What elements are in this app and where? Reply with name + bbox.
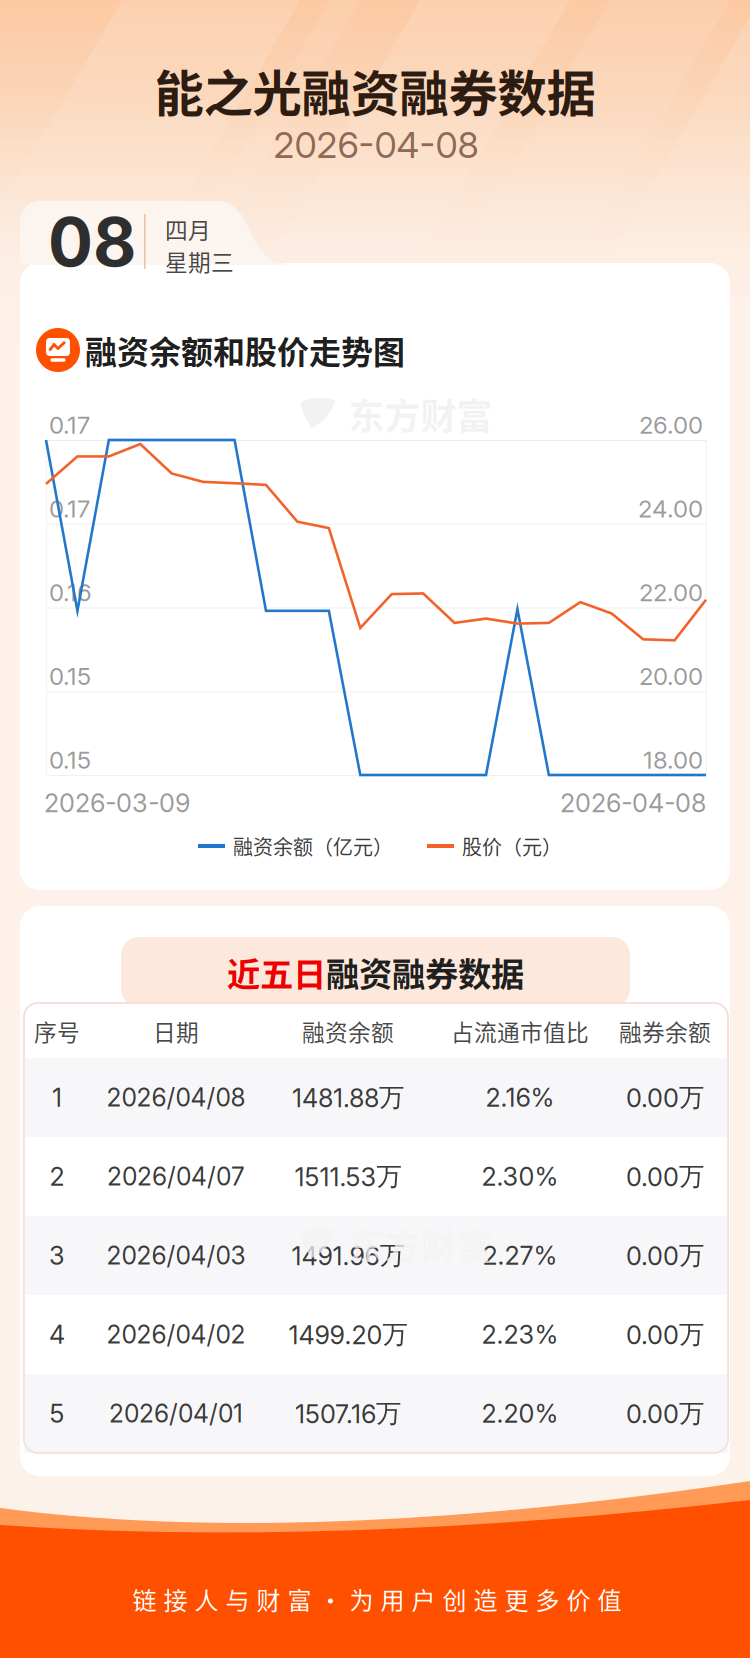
- staticText: 1: [52, 1082, 62, 1113]
- staticText: 0.00万: [626, 1397, 704, 1429]
- staticText: 融资余额（亿元）: [233, 831, 393, 860]
- staticText: 26.00: [639, 410, 703, 439]
- staticText: 1507.16万: [295, 1397, 401, 1429]
- staticText: 日期: [153, 1015, 199, 1047]
- staticText: 近五日: [227, 948, 326, 996]
- staticText: 22.00: [639, 578, 703, 607]
- staticText: 0.15: [49, 662, 91, 691]
- staticText: 0.00万: [626, 1160, 704, 1192]
- staticText: 0.00万: [626, 1318, 704, 1350]
- staticText: 2026/04/07: [107, 1162, 245, 1191]
- staticText: 0.16: [49, 578, 92, 607]
- staticText: 0.17: [49, 410, 90, 439]
- staticText: 2.16%: [485, 1082, 554, 1113]
- staticText: 2.20%: [481, 1398, 558, 1429]
- staticText: 08: [48, 202, 136, 282]
- staticText: 1481.88万: [292, 1081, 404, 1113]
- staticText: 4: [49, 1319, 65, 1350]
- staticText: 2026/04/08: [106, 1083, 245, 1112]
- staticText: 0.17: [49, 494, 90, 523]
- staticText: 1491.96万: [291, 1239, 404, 1271]
- staticText: 1511.53万: [294, 1160, 401, 1192]
- staticText: 股价（元）: [462, 831, 562, 860]
- staticText: 融资余额和股价走势图: [85, 327, 405, 373]
- staticText: 东方财富: [348, 1218, 492, 1270]
- staticText: 能之光融资融券数据: [154, 54, 595, 126]
- staticText: 融资余额: [302, 1015, 394, 1047]
- staticText: 序号: [34, 1015, 80, 1047]
- staticText: 2026-03-09: [44, 788, 190, 818]
- staticText: 占流通市值比: [451, 1015, 589, 1047]
- staticText: 0.00万: [626, 1081, 704, 1113]
- staticText: 2.27%: [482, 1240, 557, 1271]
- staticText: 5: [49, 1398, 64, 1429]
- staticText: 24.00: [638, 494, 703, 523]
- staticText: 1499.20万: [288, 1318, 407, 1350]
- staticText: 2026/04/01: [109, 1399, 243, 1428]
- staticText: 链接人与财富·为用户创造更多价值: [132, 1582, 621, 1616]
- staticText: 0.15: [49, 745, 91, 774]
- staticText: 四月: [165, 213, 211, 245]
- staticText: 0.00万: [626, 1239, 704, 1271]
- staticText: 星期三: [165, 245, 234, 277]
- staticText: 东方财富: [348, 388, 492, 440]
- staticText: 2026/04/03: [106, 1241, 245, 1270]
- staticText: 20.00: [639, 662, 703, 691]
- staticText: 2.30%: [481, 1161, 558, 1192]
- staticText: 2.23%: [481, 1319, 558, 1350]
- staticText: 18.00: [643, 745, 703, 774]
- staticText: 2026/04/02: [106, 1320, 245, 1349]
- staticText: 3: [49, 1240, 65, 1271]
- staticText: 融券余额: [619, 1015, 711, 1047]
- staticText: 2026-04-08: [560, 788, 706, 818]
- staticText: 2026-04-08: [273, 123, 478, 167]
- staticText: 2: [49, 1161, 64, 1192]
- staticText: 融资融券数据: [326, 948, 524, 996]
